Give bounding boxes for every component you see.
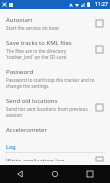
button[interactable]: Write application log	[0, 153, 110, 165]
button[interactable]: Unchecked	[94, 102, 105, 113]
staticText: Start the service on boot	[6, 25, 59, 31]
button[interactable]: Accelerometer	[0, 122, 110, 138]
button[interactable]: Unchecked	[94, 18, 105, 29]
staticText: Write application log	[6, 157, 65, 161]
button[interactable]: Recent apps	[84, 168, 96, 180]
button[interactable]: Password	[0, 64, 110, 93]
button[interactable]: Save tracks to KML files	[0, 35, 110, 64]
button[interactable]: Send old locations	[0, 93, 110, 122]
staticText: Send old locations	[6, 97, 58, 105]
staticText: Password	[6, 68, 34, 76]
button[interactable]: Home	[49, 168, 61, 180]
staticText: The files are in the directory 'tracker_…	[6, 48, 90, 60]
staticText: Accelerometer	[6, 126, 47, 134]
staticText: Send not sent locations from previous se…	[6, 106, 90, 118]
staticText: Log	[6, 143, 16, 150]
staticText: Save tracks to KML files	[6, 39, 72, 47]
button[interactable]: Unchecked	[94, 157, 105, 161]
button[interactable]: Back	[14, 168, 26, 180]
button[interactable]: Unchecked	[94, 44, 105, 55]
button[interactable]: Autostart	[0, 12, 110, 35]
staticText: Password to start/stop the tracker and t…	[6, 77, 105, 89]
staticText: 11:27	[95, 1, 108, 8]
staticText: Autostart	[6, 16, 33, 24]
